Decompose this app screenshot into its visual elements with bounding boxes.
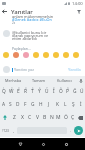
button[interactable]: G [29, 98, 37, 111]
staticText: 3 [18, 87, 20, 91]
button[interactable]: Tamam [26, 76, 52, 85]
button[interactable]: , [11, 124, 17, 137]
button[interactable]: 3 [15, 85, 22, 98]
button[interactable]: Merhaba [0, 76, 26, 85]
button[interactable]: 0 [64, 85, 71, 98]
button[interactable]: Z [10, 111, 18, 124]
button[interactable]: K [53, 98, 61, 111]
button[interactable]: C [26, 111, 34, 124]
staticText: 4 [25, 87, 27, 91]
button[interactable] [23, 52, 29, 58]
button[interactable]: D [14, 98, 21, 111]
button[interactable]: B [41, 111, 48, 124]
button[interactable]: Send [74, 126, 83, 135]
button[interactable] [63, 52, 69, 58]
staticText: Yanıtını yaz [14, 67, 34, 72]
staticText: J [48, 101, 50, 108]
staticText: C [28, 114, 32, 121]
button[interactable]: F [21, 98, 29, 111]
button[interactable]: A [0, 98, 7, 111]
button[interactable]: Yanıtla [67, 66, 82, 73]
button[interactable]: Back [15, 139, 25, 149]
staticText: I [53, 88, 55, 95]
staticText: X [21, 114, 24, 121]
button[interactable] [3, 52, 9, 58]
button[interactable]: Shift [0, 111, 10, 124]
staticText: Merhaba [5, 78, 22, 83]
button[interactable]: M [55, 111, 62, 124]
button[interactable]: Ö [62, 111, 69, 124]
staticText: A [2, 101, 6, 108]
button[interactable]: Ş [69, 98, 77, 111]
button[interactable]: Home [38, 139, 48, 149]
button[interactable] [13, 52, 19, 58]
button[interactable]: ?123 [0, 124, 11, 137]
button[interactable]: Ü [78, 85, 85, 98]
staticText: Y [38, 88, 41, 95]
staticText: V [36, 114, 40, 121]
staticText: F [24, 101, 27, 108]
staticText: 2 [11, 87, 13, 91]
button[interactable]: Voice input [77, 76, 85, 85]
staticText: M [56, 114, 61, 121]
button[interactable]: X [18, 111, 26, 124]
staticText: 1 [3, 87, 5, 91]
staticText: , [13, 128, 15, 133]
staticText: Yanıtla [68, 67, 81, 72]
button[interactable]: 7 [43, 85, 50, 98]
staticText: 7 [46, 87, 48, 91]
staticText: Ş [72, 101, 75, 108]
button[interactable] [33, 52, 39, 58]
button[interactable]: Ğ [71, 85, 78, 98]
staticText: Kullanıcı [57, 78, 72, 83]
staticText: Ö [64, 114, 68, 121]
button[interactable]: Backspace [76, 111, 85, 124]
button[interactable]: 1 [0, 85, 8, 98]
staticText: 14:00 [72, 1, 83, 7]
staticText: Paylaşılan... [12, 46, 31, 51]
staticText: anlam mükemmmelsin [12, 14, 54, 19]
button[interactable]: V [34, 111, 41, 124]
staticText: Q [2, 88, 6, 95]
staticText: W [9, 88, 14, 95]
button[interactable] [73, 52, 79, 58]
staticText: Tamam [32, 78, 46, 83]
staticText: ettim aktarıldı [12, 36, 37, 41]
staticText: T [31, 88, 34, 95]
button[interactable]: L [61, 98, 69, 111]
staticText: G [31, 101, 35, 108]
button[interactable]: İ [77, 98, 85, 111]
staticText: H [39, 101, 43, 108]
staticText: Z [13, 114, 16, 121]
button[interactable]: Recents [61, 139, 71, 149]
button[interactable]: Ç [69, 111, 76, 124]
button[interactable]: Back [0, 7, 9, 16]
button[interactable]: Filter [74, 7, 84, 16]
button[interactable]: 4 [22, 85, 29, 98]
button[interactable]: Kullanıcı [52, 76, 77, 85]
staticText: L [64, 101, 67, 108]
button[interactable]: 2 [8, 85, 15, 98]
button[interactable]: S [7, 98, 14, 111]
button[interactable]: 5 [29, 85, 36, 98]
staticText: 6 [39, 87, 41, 91]
button[interactable]: 6 [36, 85, 43, 98]
button[interactable]: H [37, 98, 45, 111]
button[interactable]: J [45, 98, 53, 111]
staticText: 8 [53, 87, 55, 91]
staticText: P [66, 88, 69, 95]
staticText: ?123 [2, 129, 9, 133]
button[interactable]: 9 [57, 85, 64, 98]
staticText: E [17, 88, 20, 95]
button[interactable]: N [48, 111, 55, 124]
staticText: 2s [12, 21, 16, 25]
button[interactable] [53, 52, 59, 58]
staticText: D [16, 101, 20, 108]
button[interactable] [43, 52, 49, 58]
button[interactable]: 8 [50, 85, 57, 98]
staticText: U [45, 88, 49, 95]
staticText: S [9, 101, 12, 108]
staticText: O [59, 88, 63, 95]
